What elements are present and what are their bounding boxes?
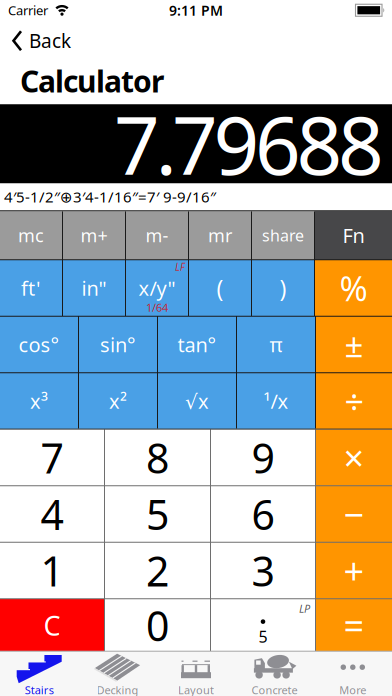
button[interactable]: ) (252, 260, 314, 316)
staticText: Concrete (251, 683, 297, 696)
staticText: Layout (178, 683, 214, 696)
button[interactable]: 1 (0, 543, 104, 598)
staticText: = (343, 601, 364, 649)
staticText: 5 (258, 626, 267, 647)
button[interactable]: mr (189, 211, 251, 259)
staticText: 7.79688 (114, 91, 384, 197)
staticText: 9 (251, 430, 274, 485)
staticText: 5 (146, 487, 169, 541)
button[interactable]: share (252, 211, 314, 259)
staticText: ( (216, 273, 223, 303)
staticText: mr (208, 223, 232, 247)
staticText: Carrier (8, 2, 48, 19)
staticText: x³ (30, 388, 48, 414)
button[interactable]: ft' (0, 260, 62, 316)
button[interactable]: x/y" (126, 260, 188, 316)
staticText: + (343, 547, 364, 594)
button[interactable]: m- (126, 211, 188, 259)
button[interactable]: + (316, 543, 392, 598)
button[interactable]: sin° (79, 317, 157, 372)
button[interactable]: Layout (157, 652, 235, 696)
staticText: Calculator (20, 61, 164, 101)
button[interactable]: % (315, 260, 392, 316)
staticText: LF (175, 260, 185, 273)
staticText: m- (145, 223, 168, 247)
button[interactable]: 5 (105, 486, 210, 542)
button[interactable]: cos° (0, 317, 78, 372)
button[interactable]: 2 (105, 543, 210, 598)
button[interactable]: = (316, 599, 392, 651)
button[interactable]: × (316, 430, 392, 485)
staticText: Back (29, 28, 71, 53)
staticText: LP (299, 601, 310, 616)
button[interactable]: x³ (0, 373, 78, 429)
staticText: × (343, 434, 364, 481)
staticText: 0 (146, 598, 169, 652)
staticText: ¹/x (263, 388, 288, 414)
button[interactable]: 4 (0, 486, 104, 542)
staticText: C (43, 607, 60, 643)
button[interactable]: Stairs (0, 652, 78, 696)
staticText: 6 (251, 487, 274, 541)
button[interactable]: 8 (105, 430, 210, 485)
staticText: − (343, 490, 364, 538)
staticText: m+ (80, 223, 107, 247)
button[interactable]: 6 (211, 486, 315, 542)
button[interactable]: m+ (63, 211, 125, 259)
button[interactable]: C (0, 599, 104, 651)
staticText: 1 (40, 543, 63, 598)
staticText: 2 (146, 543, 169, 598)
button[interactable]: 7 (0, 430, 104, 485)
staticText: x/y" (138, 275, 175, 301)
staticText: share (262, 225, 304, 246)
staticText: ft' (21, 275, 41, 301)
staticText: √x (185, 388, 209, 414)
button[interactable]: − (316, 486, 392, 542)
button[interactable]: tan° (158, 317, 236, 372)
button[interactable]: ± (316, 317, 392, 372)
button[interactable]: in" (63, 260, 125, 316)
button[interactable]: mc (0, 211, 62, 259)
staticText: ) (279, 273, 286, 303)
staticText: Stairs (25, 683, 54, 696)
button[interactable]: 3 (211, 543, 315, 598)
staticText: mc (18, 223, 44, 247)
button[interactable]: More (314, 652, 392, 696)
staticText: cos° (18, 331, 59, 358)
staticText: 4 (40, 487, 63, 541)
staticText: sin° (100, 331, 136, 358)
button[interactable]: x² (79, 373, 157, 429)
button[interactable]: Fn (315, 211, 392, 259)
staticText: 4′5-1/2″⊕3′4-1/16″=7′ 9-9/16″ (4, 187, 216, 207)
button[interactable]: Decimal point (211, 599, 315, 651)
button[interactable]: 9 (211, 430, 315, 485)
staticText: Decking (97, 683, 139, 696)
staticText: π (269, 331, 282, 358)
button[interactable]: Decking (78, 652, 157, 696)
staticText: tan° (177, 331, 216, 358)
staticText: 8 (146, 430, 169, 485)
staticText: More (339, 683, 366, 696)
button[interactable]: ¹/x (237, 373, 315, 429)
staticText: x² (109, 388, 127, 414)
staticText: 3 (251, 543, 274, 598)
staticText: 1/64 (146, 300, 168, 315)
button[interactable]: Back (0, 28, 71, 53)
button[interactable]: 0 (105, 599, 210, 651)
button[interactable]: Concrete (235, 652, 314, 696)
staticText: Fn (342, 222, 364, 249)
button[interactable]: √x (158, 373, 236, 429)
button[interactable]: ( (189, 260, 251, 316)
button[interactable]: π (237, 317, 315, 372)
staticText: ÷ (344, 378, 363, 424)
button[interactable]: ÷ (316, 373, 392, 429)
staticText: ± (344, 323, 363, 366)
staticText: 7 (40, 430, 63, 485)
staticText: % (339, 265, 367, 311)
staticText: 9:11 PM (169, 1, 223, 20)
staticText: in" (81, 275, 106, 301)
